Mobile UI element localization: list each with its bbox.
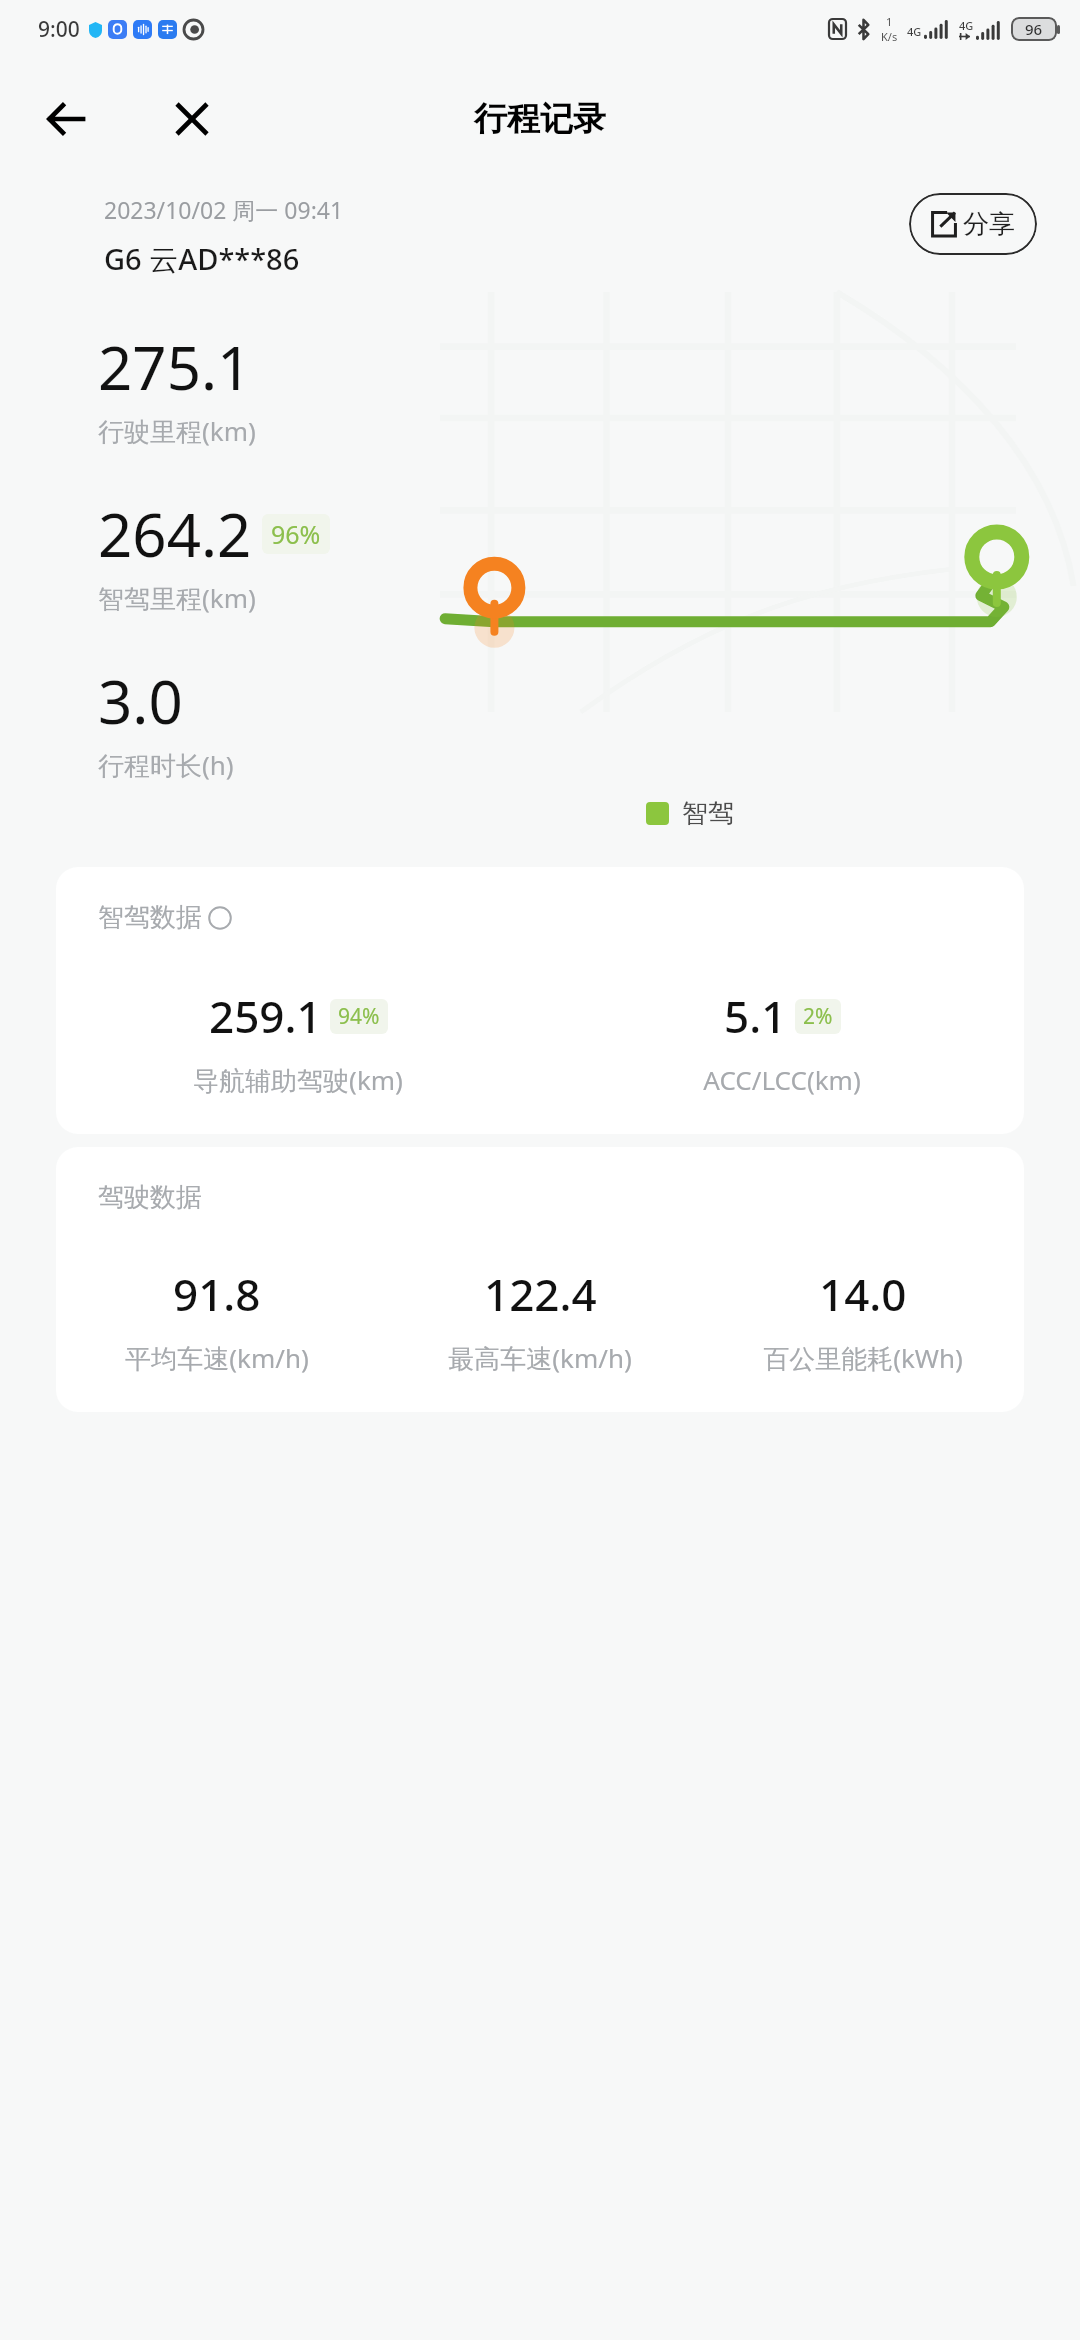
staticText: 智驾里程(km) [98,580,256,616]
staticText: 4G [959,18,974,33]
staticText: 智驾数据 [98,901,202,934]
other: Info [208,906,232,930]
staticText: 94% [338,1002,380,1031]
staticText: K/s [881,29,898,44]
staticText: 5.1 [724,986,787,1046]
button[interactable]: Back [34,87,98,151]
staticText: 275.1 [98,326,252,408]
button[interactable]: Close [162,89,222,149]
button[interactable]: 驾驶数据 [56,1147,1024,1412]
staticText: 259.1 [209,986,322,1046]
staticText: 行程时长(h) [98,747,234,783]
staticText: 行程记录 [474,98,606,140]
staticText: 百公里能耗(kWh) [763,1340,963,1376]
button[interactable]: 智驾数据 [56,867,1024,1134]
staticText: 91.8 [173,1264,261,1324]
staticText: 驾驶数据 [98,1181,202,1214]
staticText: 2023/10/02 周一 09:41 [104,194,344,225]
staticText: 9:00 [38,15,80,44]
staticText: 1 [886,14,893,29]
button[interactable]: 分享 [909,193,1037,255]
staticText: 导航辅助驾驶(km) [193,1062,403,1098]
staticText: 264.2 [98,493,252,575]
staticText: 行驶里程(km) [98,413,256,449]
staticText: 2% [803,1002,833,1031]
staticText: 122.4 [484,1264,597,1324]
staticText: 96 [1025,19,1043,39]
staticText: 平均车速(km/h) [125,1340,309,1376]
staticText: 3.0 [98,660,183,742]
staticText: 96% [271,517,321,551]
staticText: 4G [907,24,922,39]
staticText: G6 云AD***86 [104,239,300,279]
staticText: 分享 [963,208,1015,241]
staticText: ACC/LCC(km) [703,1062,861,1097]
staticText: 最高车速(km/h) [448,1340,632,1376]
staticText: 智驾 [682,797,734,830]
staticText: 14.0 [819,1264,907,1324]
